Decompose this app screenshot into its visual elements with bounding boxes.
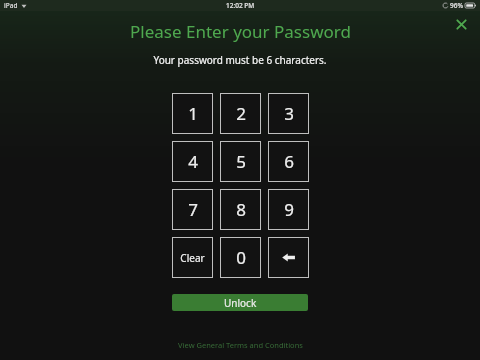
button[interactable]: 7 — [172, 189, 213, 230]
button[interactable]: Unlock — [172, 294, 308, 311]
staticText: Unlock — [224, 296, 257, 310]
staticText: 2 — [236, 102, 246, 125]
staticText: 3 — [284, 102, 294, 125]
staticText: 12:02 PM — [226, 1, 255, 10]
button[interactable]: 1 — [172, 93, 213, 134]
button[interactable]: 8 — [220, 189, 261, 230]
staticText: 9 — [284, 198, 294, 221]
button[interactable]: 2 — [220, 93, 261, 134]
button[interactable]: 5 — [220, 141, 261, 182]
button[interactable]: Backspace — [268, 237, 309, 278]
button[interactable]: View General Terms and Conditions — [172, 338, 309, 352]
staticText: 8 — [236, 198, 246, 221]
staticText: 96% — [450, 1, 463, 10]
staticText: Please Enter your Password — [130, 20, 351, 43]
staticText: Clear — [180, 251, 205, 265]
staticText: 1 — [188, 102, 198, 125]
staticText: Your password must be 6 characters. — [153, 53, 327, 67]
staticText: 4 — [188, 150, 198, 173]
staticText: View General Terms and Conditions — [178, 340, 303, 350]
staticText: 7 — [188, 198, 198, 221]
button[interactable]: 0 — [220, 237, 261, 278]
button[interactable]: Close — [450, 13, 472, 35]
button[interactable]: 6 — [268, 141, 309, 182]
staticText: 6 — [284, 150, 294, 173]
staticText: iPad — [4, 1, 18, 10]
button[interactable]: 9 — [268, 189, 309, 230]
staticText: 0 — [236, 246, 246, 269]
staticText: 5 — [236, 150, 246, 173]
button[interactable]: 4 — [172, 141, 213, 182]
button[interactable]: Clear — [172, 237, 213, 278]
button[interactable]: 3 — [268, 93, 309, 134]
